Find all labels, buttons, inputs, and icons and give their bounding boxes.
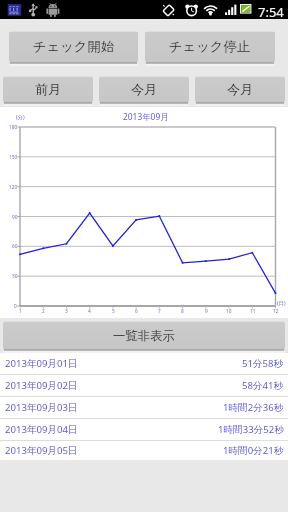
staticText: 11 (250, 308, 256, 315)
staticText: 7 (158, 308, 161, 315)
staticText: 120 (9, 184, 18, 191)
button[interactable]: 一覧非表示 (3, 321, 285, 353)
button[interactable]: 2013年09月04日 (0, 419, 288, 440)
staticText: 今月 (227, 81, 254, 98)
staticText: 5 (112, 308, 115, 315)
staticText: 4 (88, 308, 91, 315)
staticText: 2013年09月04日 (5, 423, 78, 436)
staticText: 2013年09月01日 (5, 357, 78, 370)
staticText: 3 (65, 308, 68, 315)
staticText: 8 (181, 308, 184, 315)
staticText: 2013年09月05日 (5, 444, 78, 457)
other: Battery (240, 4, 253, 15)
staticText: 2013年09月 (123, 111, 169, 122)
staticText: 90 (12, 214, 18, 221)
staticText: 7:54 (258, 3, 284, 21)
staticText: 51分58秒 (242, 357, 284, 370)
staticText: 1時間0分21秒 (223, 444, 284, 457)
other: Vibrate mode (162, 4, 176, 16)
staticText: チェック停止 (169, 38, 251, 55)
staticText: 9 (205, 308, 208, 315)
staticText: 0 (14, 303, 17, 310)
staticText: 60 (12, 243, 18, 250)
staticText: 58分41秒 (242, 379, 284, 392)
staticText: 前月 (35, 81, 62, 98)
button[interactable]: 2013年09月01日 (0, 353, 288, 374)
staticText: 30 (12, 273, 18, 280)
button[interactable]: 今月 (195, 76, 285, 106)
button[interactable]: 今月 (99, 76, 189, 106)
staticText: 1時間2分36秒 (223, 401, 284, 414)
staticText: 1時間33分52秒 (218, 423, 284, 436)
staticText: 180 (9, 124, 18, 131)
other: Alarm set (185, 4, 199, 18)
button[interactable]: 前月 (3, 76, 93, 106)
staticText: 2013年09月03日 (5, 401, 78, 414)
staticText: 6 (135, 308, 138, 315)
other: Wi-Fi signal (204, 3, 218, 17)
button[interactable]: 2013年09月05日 (0, 441, 288, 460)
button[interactable]: チェック停止 (145, 31, 275, 66)
button[interactable]: チェック開始 (9, 31, 138, 66)
button[interactable]: 2013年09月02日 (0, 375, 288, 396)
staticText: (日) (277, 299, 286, 306)
other: Mobile signal (224, 3, 237, 16)
staticText: 2013年09月02日 (5, 379, 78, 392)
staticText: 今月 (131, 81, 158, 98)
staticText: 150 (9, 154, 18, 161)
staticText: 1 (19, 308, 22, 315)
staticText: 一覧非表示 (113, 328, 175, 343)
staticText: 2 (42, 308, 45, 315)
button[interactable]: 2013年09月03日 (0, 397, 288, 418)
staticText: チェック開始 (33, 38, 115, 55)
staticText: 12 (273, 308, 279, 315)
staticText: 10 (226, 308, 232, 315)
staticText: (分) (16, 113, 25, 120)
